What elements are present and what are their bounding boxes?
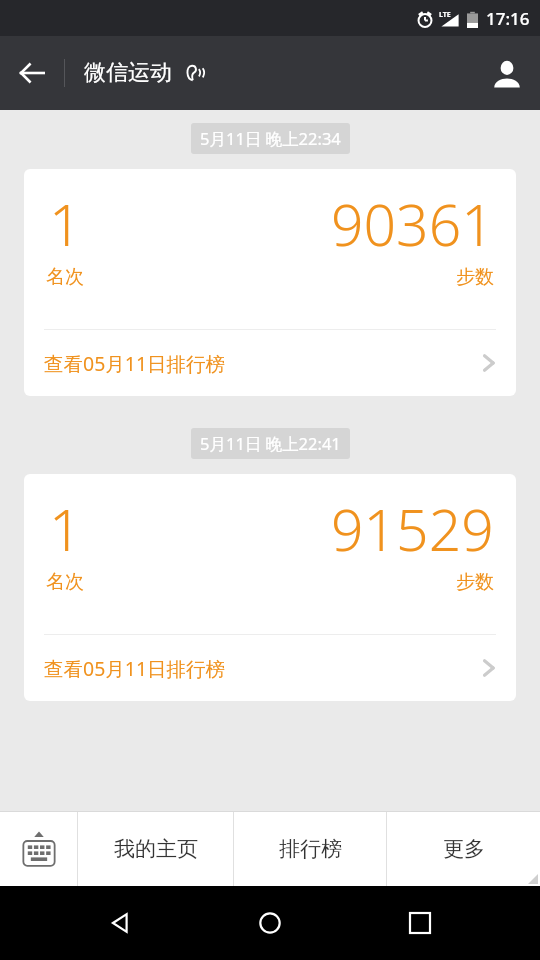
button[interactable]: Back: [90, 893, 150, 953]
staticText: 名次: [46, 265, 84, 289]
button[interactable]: 查看05月11日排行榜: [24, 635, 516, 701]
staticText: 我的主页: [114, 836, 198, 862]
button[interactable]: 更多: [387, 812, 540, 886]
staticText: 步数: [456, 570, 494, 594]
button[interactable]: Profile: [474, 36, 540, 110]
staticText: 5月11日 晚上22:34: [200, 127, 341, 150]
button[interactable]: Keyboard: [0, 812, 77, 886]
staticText: 查看05月11日排行榜: [44, 350, 226, 377]
staticText: 微信运动: [84, 59, 172, 87]
button[interactable]: 排行榜: [234, 812, 386, 886]
staticText: 1: [49, 185, 82, 263]
staticText: 17:16: [486, 7, 530, 30]
staticText: 1: [49, 490, 82, 568]
button[interactable]: Home: [240, 893, 300, 953]
staticText: 查看05月11日排行榜: [44, 655, 226, 682]
staticText: 步数: [456, 265, 494, 289]
button[interactable]: 查看05月11日排行榜: [24, 330, 516, 396]
staticText: 91529: [331, 490, 494, 568]
staticText: 5月11日 晚上22:41: [200, 432, 341, 455]
button[interactable]: Back: [0, 36, 64, 110]
button[interactable]: Recents: [390, 893, 450, 953]
staticText: 名次: [46, 570, 84, 594]
staticText: 90361: [331, 185, 494, 263]
staticText: 排行榜: [279, 836, 342, 862]
staticText: 更多: [443, 836, 485, 862]
button[interactable]: 我的主页: [78, 812, 233, 886]
staticText: LTE: [439, 10, 451, 20]
